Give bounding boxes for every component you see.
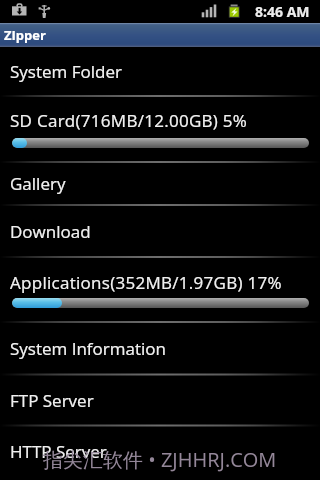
staticText: Gallery	[10, 172, 66, 195]
staticText: 指尖汇软件 • ZJHHRJ.COM	[43, 446, 277, 473]
staticText: HTTP Server	[10, 440, 107, 463]
staticText: FTP Server	[10, 389, 94, 412]
staticText: Applications(352MB/1.97GB) 17%	[10, 271, 282, 294]
staticText: Download	[10, 220, 91, 243]
staticText: ZIpper	[4, 26, 46, 44]
button[interactable]: Gallery	[0, 162, 320, 205]
button[interactable]: FTP Server	[0, 374, 320, 426]
button[interactable]: HTTP Server	[0, 426, 320, 477]
button[interactable]: Download	[0, 205, 320, 257]
staticText: SD Card(716MB/12.00GB) 5%	[10, 109, 248, 132]
button[interactable]: System Information	[0, 322, 320, 374]
button[interactable]: SD Card(716MB/12.00GB) 5%	[0, 96, 320, 162]
staticText: System Information	[10, 337, 166, 360]
staticText: 8:46 AM	[255, 2, 310, 21]
staticText: System Folder	[10, 60, 122, 83]
button[interactable]: System Folder	[0, 47, 320, 96]
button[interactable]: Applications(352MB/1.97GB) 17%	[0, 257, 320, 322]
